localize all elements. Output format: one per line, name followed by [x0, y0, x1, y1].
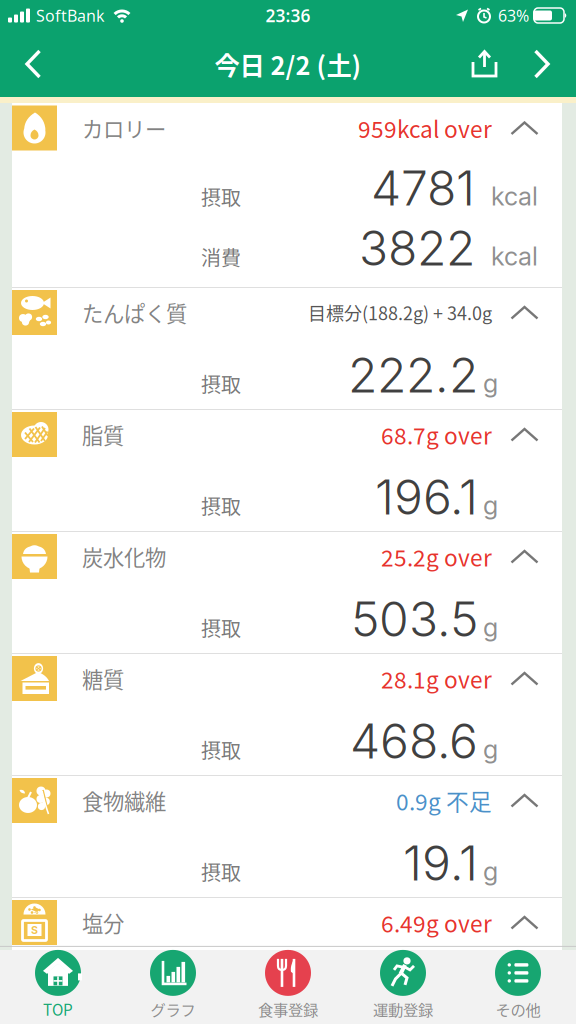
staticText: カロリー — [82, 113, 166, 143]
button[interactable]: 翌日 — [508, 49, 576, 79]
staticText: 468.6 — [350, 712, 478, 770]
button[interactable]: 今日 2/2 (土) — [214, 46, 361, 82]
staticText: 食物繊維 — [82, 785, 166, 816]
button[interactable]: 前日 — [0, 49, 43, 79]
staticText: 摂取 — [201, 182, 241, 211]
staticText: 摂取 — [201, 857, 241, 886]
button[interactable]: その他 — [460, 950, 575, 1020]
staticText: その他 — [495, 998, 540, 1020]
staticText: 959kcal over — [358, 112, 492, 144]
staticText: 25.2g over — [381, 540, 492, 573]
staticText: kcal — [491, 181, 538, 212]
staticText: SoftBank — [36, 5, 105, 26]
staticText: グラフ — [150, 998, 195, 1020]
staticText: g — [483, 734, 498, 765]
staticText: g — [483, 490, 498, 521]
button[interactable]: カロリー — [12, 105, 562, 150]
button[interactable]: 炭水化物 — [12, 534, 562, 579]
staticText: 4781 — [371, 159, 475, 217]
staticText: 食事登録 — [258, 998, 318, 1020]
staticText: 炭水化物 — [82, 541, 166, 572]
button[interactable]: S — [12, 900, 562, 945]
staticText: 6.49g over — [381, 906, 492, 939]
staticText: TOP — [43, 998, 73, 1020]
staticText: 68.7g over — [381, 418, 492, 451]
staticText: g — [483, 368, 498, 399]
staticText: 3822 — [359, 219, 475, 277]
staticText: g — [483, 856, 498, 887]
button[interactable]: グラフ — [115, 950, 230, 1020]
staticText: 19.1 — [403, 834, 478, 892]
staticText: 消費 — [201, 242, 241, 271]
staticText: 運動登録 — [373, 998, 433, 1020]
button[interactable]: 食事登録 — [230, 950, 345, 1020]
staticText: 今日 2/2 (土) — [214, 46, 361, 82]
staticText: 摂取 — [201, 613, 241, 642]
button[interactable]: TOP — [0, 950, 115, 1020]
button[interactable]: 共有 — [469, 50, 500, 78]
staticText: 糖質 — [82, 663, 124, 694]
staticText: 28.1g over — [381, 662, 492, 695]
button[interactable]: たんぱく質 — [12, 290, 562, 335]
staticText: 塩分 — [82, 907, 124, 938]
staticText: たんぱく質 — [82, 297, 187, 328]
staticText: 222.2 — [348, 346, 478, 404]
staticText: 目標分(188.2g) + 34.0g — [308, 299, 492, 326]
staticText: 摂取 — [201, 735, 241, 764]
staticText: 23:36 — [265, 4, 310, 27]
button[interactable]: 脂質 — [12, 412, 562, 457]
button[interactable]: 運動登録 — [345, 950, 460, 1020]
staticText: g — [483, 612, 498, 643]
staticText: 196.1 — [375, 468, 478, 526]
button[interactable]: 食物繊維 — [12, 778, 562, 823]
staticText: 0.9g 不足 — [396, 784, 492, 817]
staticText: 脂質 — [82, 419, 124, 450]
staticText: 摂取 — [201, 491, 241, 520]
staticText: 63% — [498, 5, 529, 26]
staticText: S — [31, 923, 38, 936]
staticText: kcal — [491, 241, 538, 272]
staticText: 摂取 — [201, 369, 241, 398]
button[interactable]: 糖質 — [12, 656, 562, 701]
staticText: 503.5 — [351, 590, 478, 648]
